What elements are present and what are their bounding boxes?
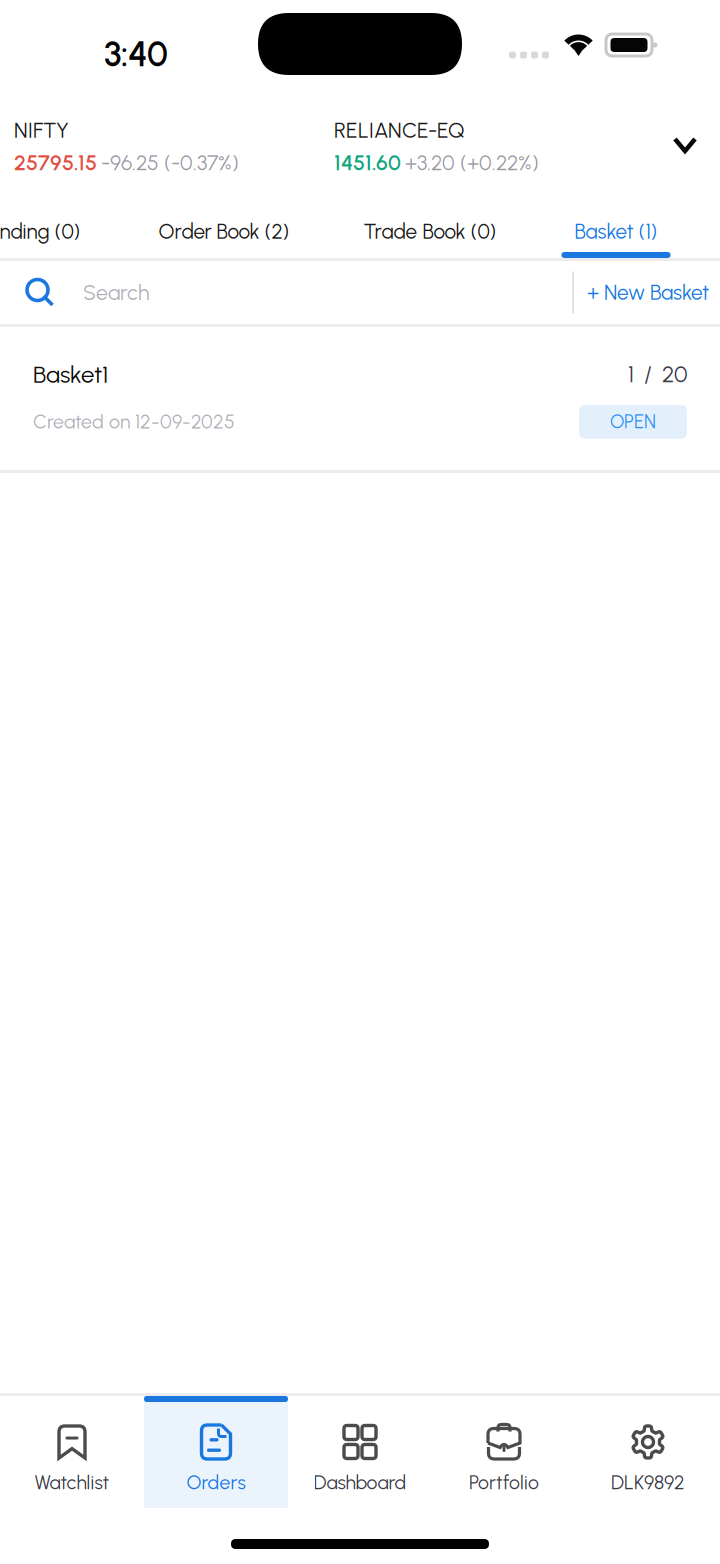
staticText: 1451.60 [334, 150, 401, 176]
button[interactable]: + New Basket [574, 261, 720, 324]
staticText: -96.25 (-0.37%) [101, 150, 239, 175]
staticText: Portfolio [469, 1471, 539, 1494]
button[interactable]: nding (0) [0, 200, 120, 258]
staticText: NIFTY [14, 117, 69, 143]
staticText: 1 / 20 [628, 361, 687, 388]
staticText: DLK9892 [611, 1471, 685, 1494]
button[interactable]: Basket (1) [536, 200, 696, 258]
button[interactable]: Order Book (2) [144, 200, 304, 258]
button[interactable]: Portfolio [432, 1396, 576, 1508]
staticText: 3:40 [104, 33, 168, 75]
button[interactable]: DLK9892 [576, 1396, 720, 1508]
staticText: + New Basket [587, 280, 709, 305]
button[interactable]: Trade Book (0) [350, 200, 510, 258]
button[interactable]: Expand market watch [650, 90, 720, 200]
staticText: Search [83, 280, 149, 305]
button[interactable]: OPEN [579, 405, 687, 439]
staticText: +3.20 (+0.22%) [405, 150, 539, 175]
staticText: Created on 12-09-2025 [33, 410, 235, 433]
staticText: 25795.15 [14, 150, 97, 176]
staticText: Orders [186, 1471, 245, 1494]
staticText: nding (0) [0, 219, 80, 244]
staticText: Dashboard [313, 1471, 406, 1494]
button[interactable]: Dashboard [288, 1396, 432, 1508]
staticText: Watchlist [34, 1471, 109, 1494]
staticText: OPEN [610, 411, 656, 433]
staticText: Basket1 [33, 360, 108, 389]
staticText: Order Book (2) [158, 219, 289, 244]
staticText: Trade Book (0) [363, 219, 496, 244]
staticText: RELIANCE-EQ [334, 117, 465, 143]
button[interactable]: Watchlist [0, 1396, 144, 1508]
button[interactable]: Orders [144, 1396, 288, 1508]
staticText: Basket (1) [574, 219, 657, 244]
